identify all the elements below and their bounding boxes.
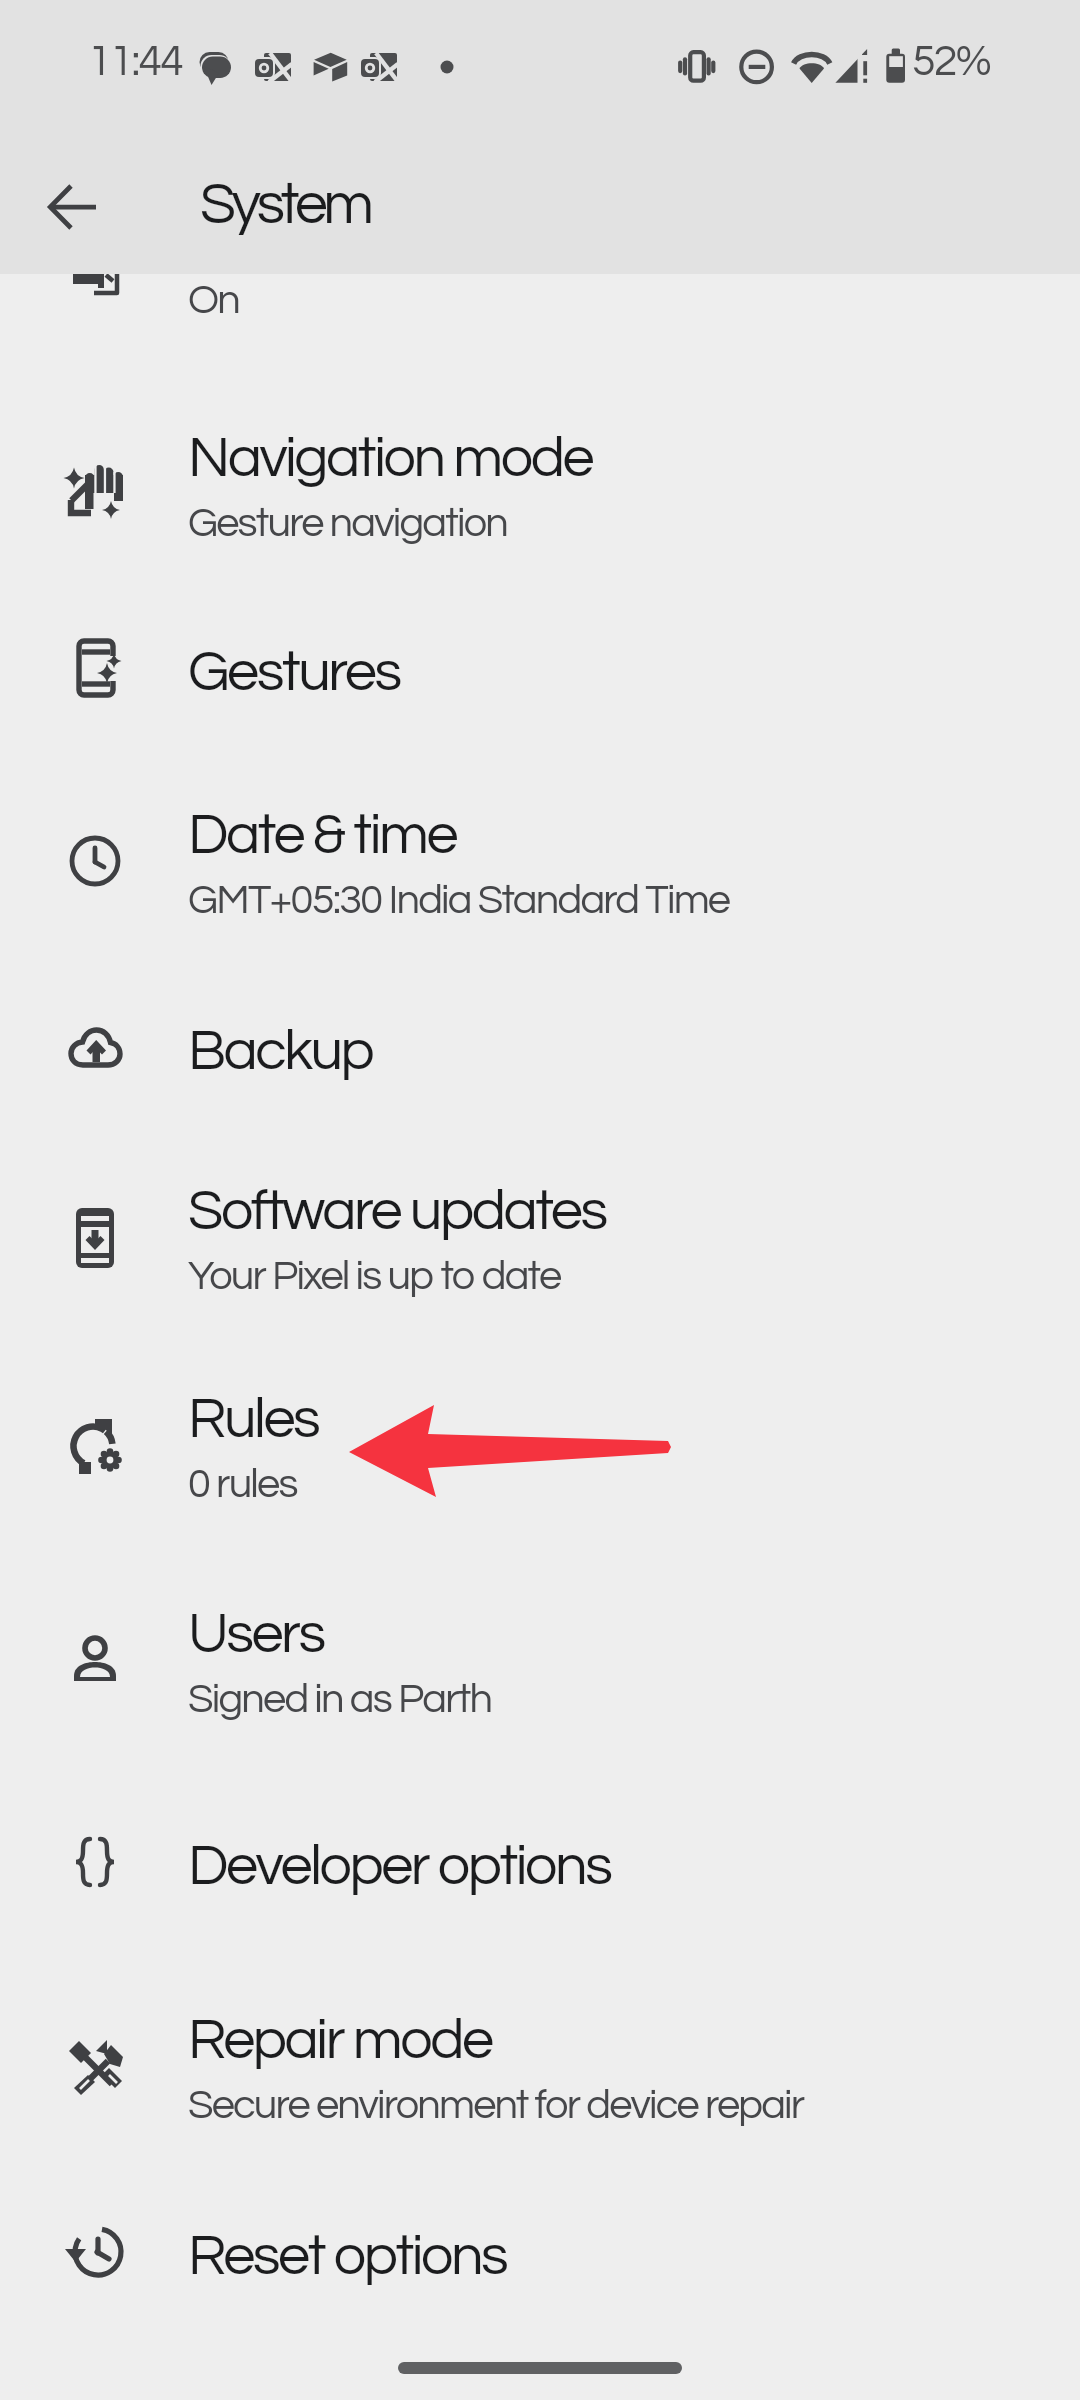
- staticText: 0 rules: [188, 1463, 297, 1506]
- staticText: GMT+05:30 India Standard Time: [188, 879, 730, 922]
- staticText: Repair mode: [188, 2011, 492, 2070]
- staticText: Software updates: [188, 1182, 606, 1241]
- button[interactable]: [0, 1351, 1080, 1545]
- staticText: Developer options: [188, 1837, 611, 1896]
- staticText: Navigation mode: [188, 429, 592, 488]
- staticText: Your Pixel is up to date: [188, 1255, 561, 1298]
- button[interactable]: [0, 767, 1080, 961]
- button[interactable]: [0, 1972, 1080, 2166]
- button[interactable]: [0, 983, 1080, 1117]
- staticText: On: [188, 279, 240, 322]
- staticText: Rules: [188, 1390, 319, 1449]
- button[interactable]: [0, 604, 1080, 738]
- button[interactable]: [0, 1798, 1080, 1932]
- button[interactable]: [0, 1566, 1080, 1760]
- staticText: Gesture navigation: [188, 502, 508, 545]
- staticText: Gestures: [188, 643, 400, 702]
- staticText: Reset options: [188, 2227, 507, 2286]
- button[interactable]: [0, 1143, 1080, 1337]
- staticText: Users: [188, 1605, 324, 1664]
- staticText: Backup: [188, 1022, 373, 1081]
- staticText: System: [200, 175, 370, 235]
- staticText: 11:44: [88, 40, 183, 84]
- staticText: 52%: [912, 40, 991, 84]
- staticText: Date & time: [188, 806, 456, 865]
- button[interactable]: Back: [48, 182, 98, 232]
- staticText: Signed in as Parth: [188, 1678, 492, 1721]
- button[interactable]: [0, 2188, 1080, 2322]
- button[interactable]: [0, 390, 1080, 584]
- staticText: Secure environment for device repair: [188, 2084, 804, 2127]
